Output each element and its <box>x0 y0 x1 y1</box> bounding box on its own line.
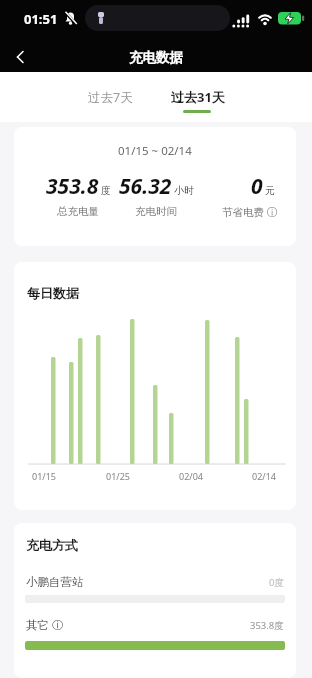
staticText: 01/15 <box>32 470 56 482</box>
staticText: 充电时间 <box>135 205 177 218</box>
staticText: 节省电费 ⓘ <box>222 205 278 219</box>
staticText: 小时 <box>174 184 194 197</box>
button[interactable]: 其它 ⓘ <box>26 617 284 633</box>
button[interactable] <box>10 46 32 68</box>
button[interactable]: 过去7天 <box>70 80 150 114</box>
staticText: 353.8 <box>46 172 99 201</box>
staticText: 总充电量 <box>57 205 99 218</box>
button[interactable]: 过去31天 <box>160 80 235 114</box>
staticText: 01:51 <box>24 10 58 28</box>
staticText: 过去7天 <box>88 89 133 106</box>
staticText: 353.8度 <box>250 619 284 632</box>
staticText: 度 <box>101 184 111 197</box>
staticText: 充电数据 <box>129 49 183 66</box>
staticText: 小鹏自营站 <box>26 575 84 589</box>
staticText: 02/14 <box>252 470 276 482</box>
staticText: 元 <box>265 184 275 197</box>
staticText: 充电方式 <box>26 537 78 553</box>
staticText: 每日数据 <box>27 285 79 301</box>
staticText: 56.32 <box>119 172 172 201</box>
staticText: 01/15 ~ 02/14 <box>118 143 192 159</box>
staticText: 0 <box>251 172 263 201</box>
staticText: 其它 ⓘ <box>26 617 64 633</box>
staticText: 过去31天 <box>171 88 225 106</box>
staticText: 01/25 <box>106 470 130 482</box>
button[interactable]: 小鹏自营站 <box>26 575 284 589</box>
staticText: 0度 <box>269 576 284 589</box>
staticText: 02/04 <box>179 470 203 482</box>
